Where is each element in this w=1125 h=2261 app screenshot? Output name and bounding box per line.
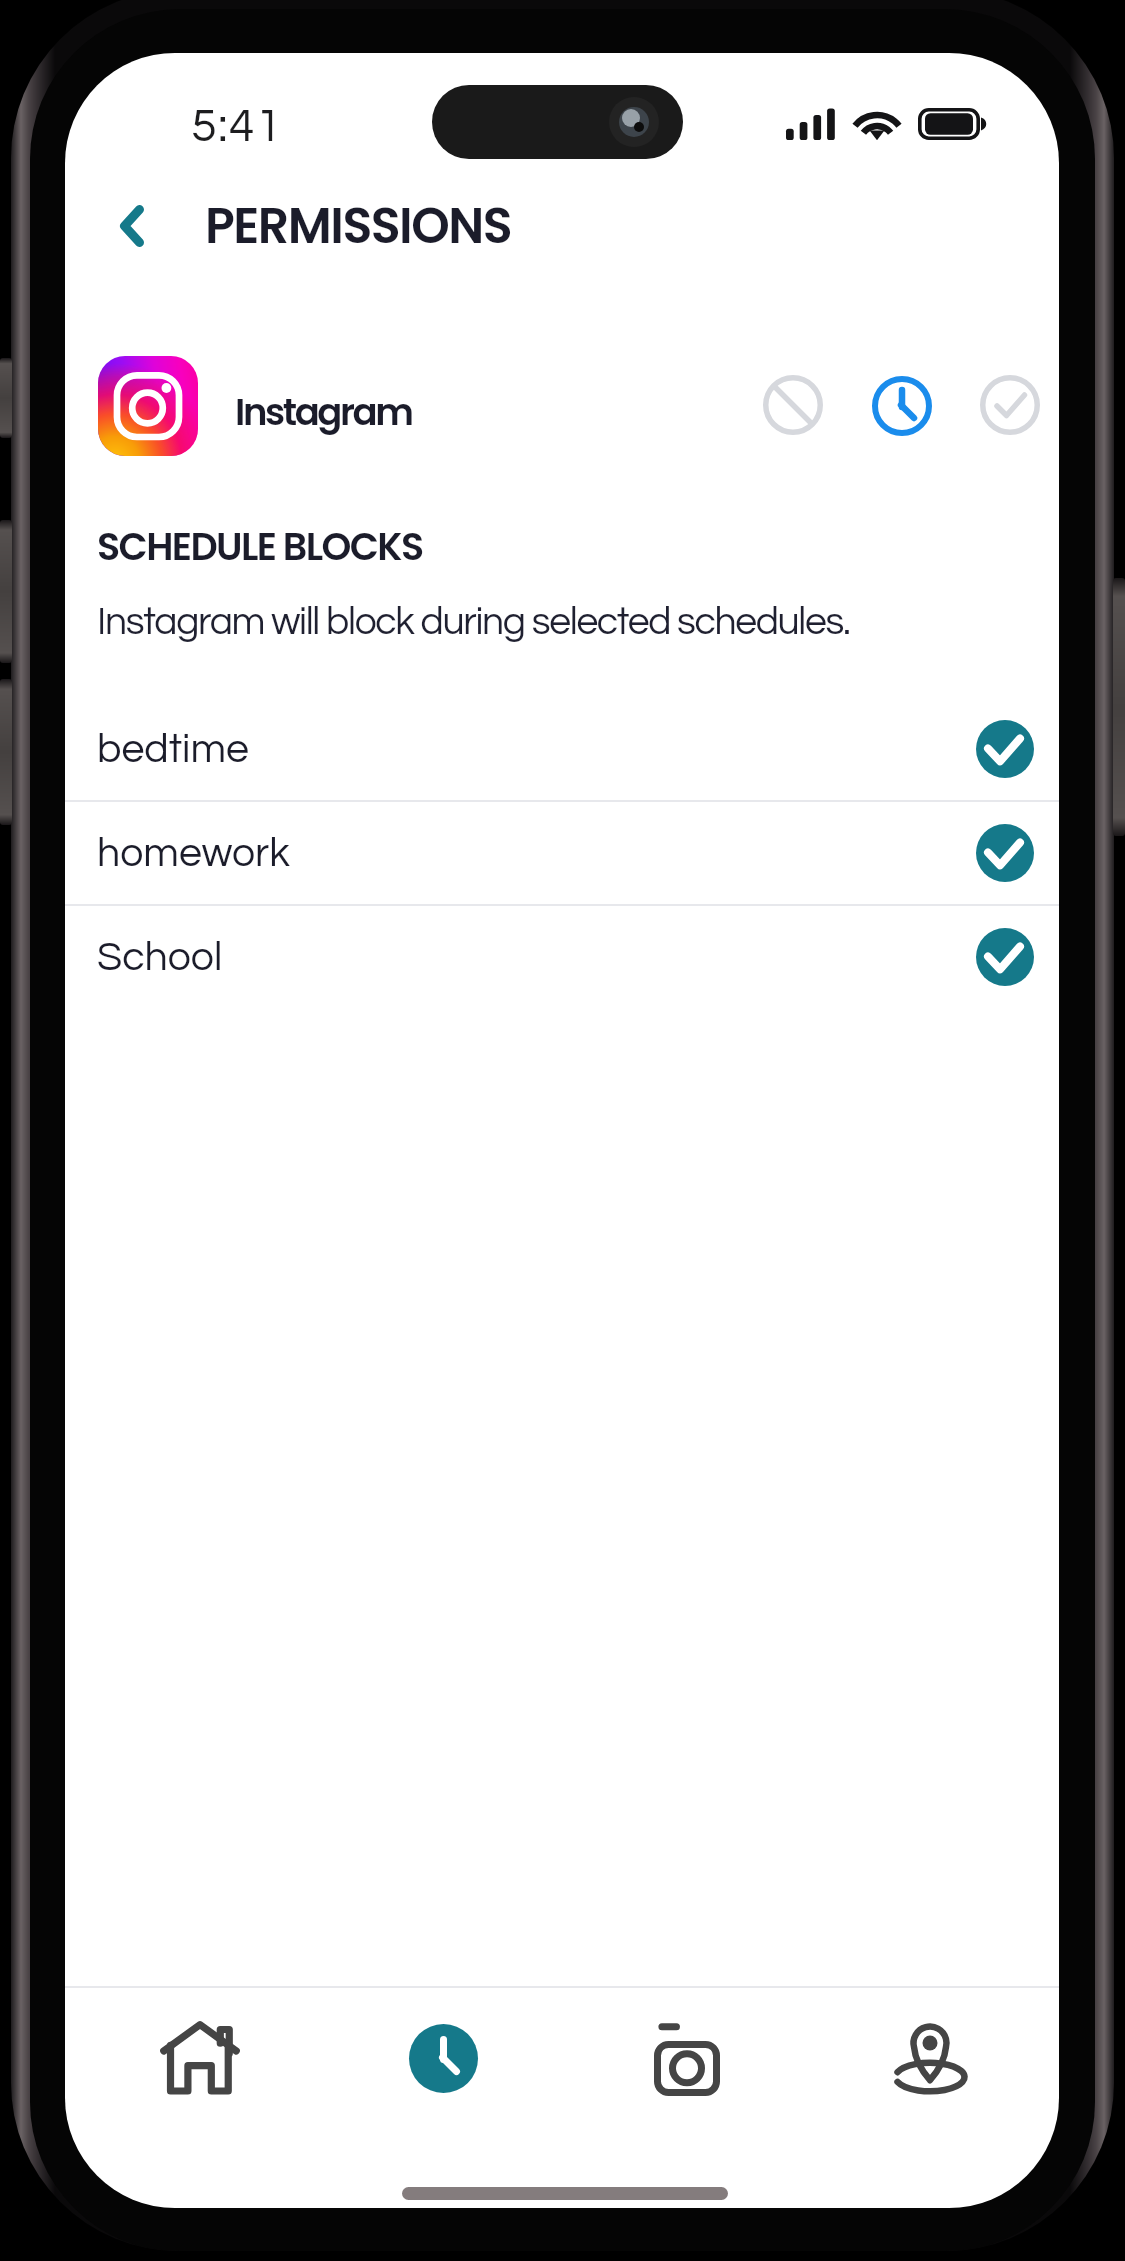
button[interactable]: School [65,906,1059,1008]
button[interactable]: PERMISSIONS [205,192,512,261]
button[interactable]: Scheduled blocks [865,369,939,443]
button[interactable]: Home [80,1989,320,2139]
staticText: SCHEDULE BLOCKS [97,520,423,573]
button[interactable]: Always blocked [756,368,830,442]
staticText: bedtime [97,728,249,770]
staticText: School [97,936,223,978]
button[interactable]: Back [95,186,169,266]
staticText: homework [97,832,290,874]
staticText: Instagram [235,386,412,438]
button[interactable]: bedtime [65,698,1059,800]
button[interactable]: Places [810,1989,1050,2139]
button[interactable]: Always allowed [973,368,1047,442]
button[interactable]: homework [65,802,1059,904]
staticText: Instagram will block during selected sch… [97,602,850,642]
button[interactable]: Schedules [323,1989,563,2139]
button[interactable]: Apps [567,1989,807,2139]
staticText: PERMISSIONS [205,192,512,261]
staticText: 5:41 [191,102,283,150]
